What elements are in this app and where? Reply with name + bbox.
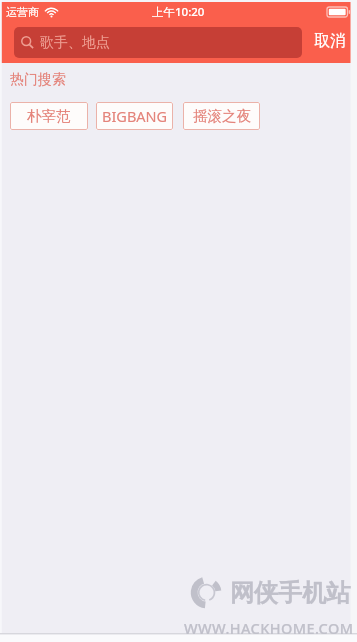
- staticText: 朴宰范: [27, 107, 71, 125]
- staticText: BIGBANG: [102, 106, 168, 126]
- button[interactable]: BIGBANG: [96, 102, 173, 130]
- staticText: 运营商: [6, 5, 39, 19]
- button[interactable]: 朴宰范: [10, 102, 88, 130]
- staticText: 热门搜索: [10, 71, 66, 89]
- button[interactable]: Search: [14, 27, 302, 58]
- staticText: WWW.HACKHOME.COM: [184, 618, 354, 638]
- other: Search: [21, 36, 34, 49]
- button[interactable]: 摇滚之夜: [183, 102, 260, 130]
- staticText: 上午10:20: [152, 4, 205, 20]
- staticText: 网侠手机站: [230, 578, 350, 608]
- button[interactable]: 取消: [303, 25, 357, 57]
- staticText: 摇滚之夜: [193, 107, 251, 125]
- staticText: 歌手、地点: [40, 34, 110, 52]
- staticText: 取消: [314, 31, 346, 51]
